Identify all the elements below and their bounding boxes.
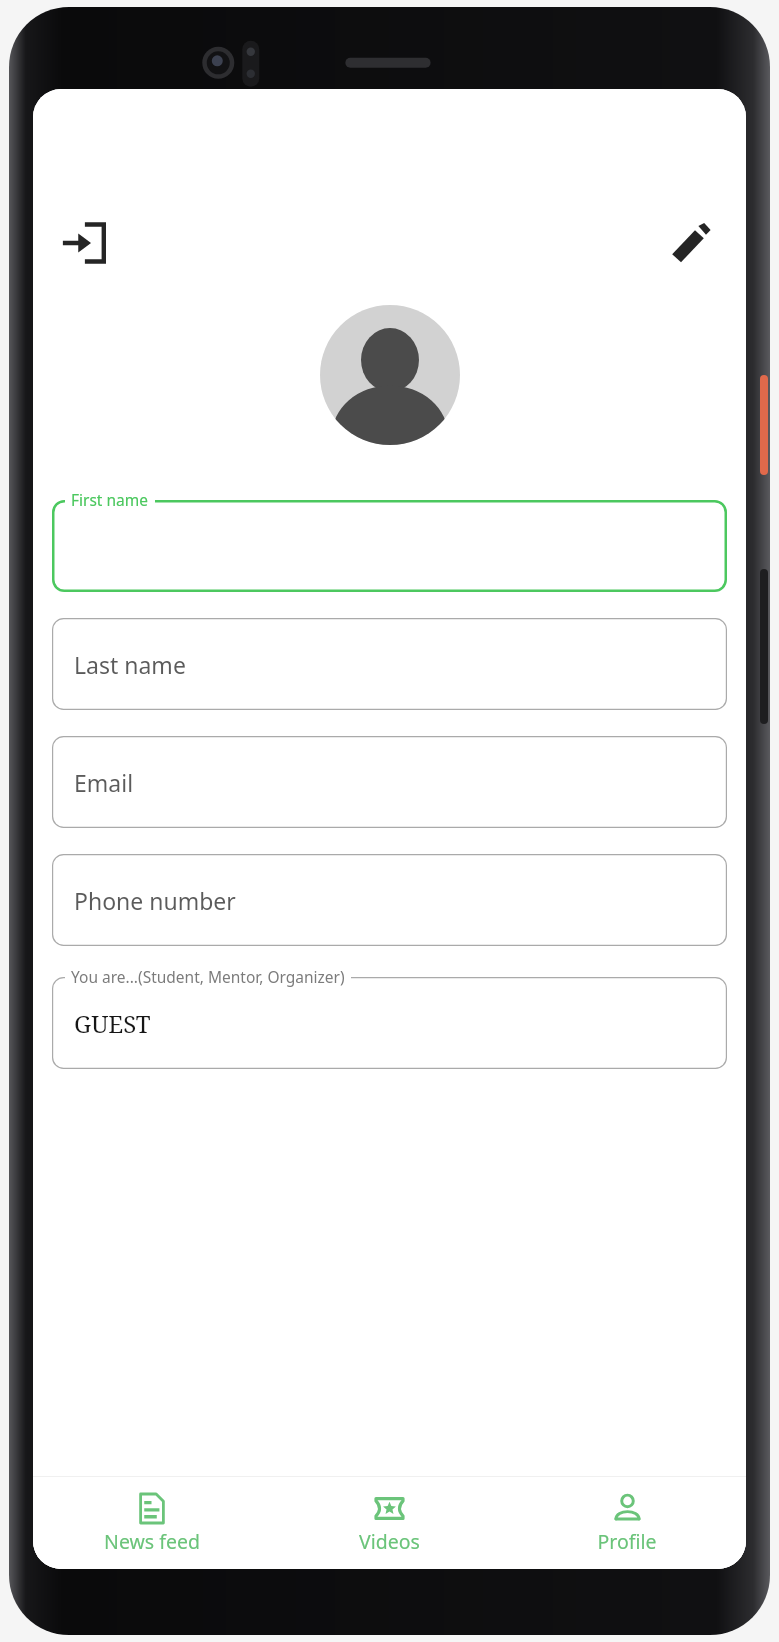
button[interactable]: Profile	[508, 1477, 746, 1569]
button[interactable]: Videos	[270, 1477, 508, 1569]
staticText: Email	[74, 767, 134, 798]
button[interactable]: Phone number	[52, 854, 727, 946]
staticText: GUEST	[74, 1007, 151, 1040]
staticText: First name	[71, 489, 149, 510]
staticText: Last name	[74, 649, 186, 680]
button[interactable]: News feed	[33, 1477, 270, 1569]
button[interactable]: Edit profile	[662, 214, 720, 272]
button[interactable]: Last name	[52, 618, 727, 710]
button[interactable]: First name	[52, 489, 727, 592]
button[interactable]: Email	[52, 736, 727, 828]
staticText: Profile	[597, 1528, 657, 1555]
button[interactable]: Log in	[55, 214, 113, 272]
button[interactable]: You are...(Student, Mentor, Organizer)	[52, 966, 727, 1069]
staticText: Phone number	[74, 885, 236, 916]
staticText: News feed	[104, 1528, 200, 1555]
staticText: Videos	[359, 1528, 420, 1555]
staticText: You are...(Student, Mentor, Organizer)	[71, 966, 345, 987]
